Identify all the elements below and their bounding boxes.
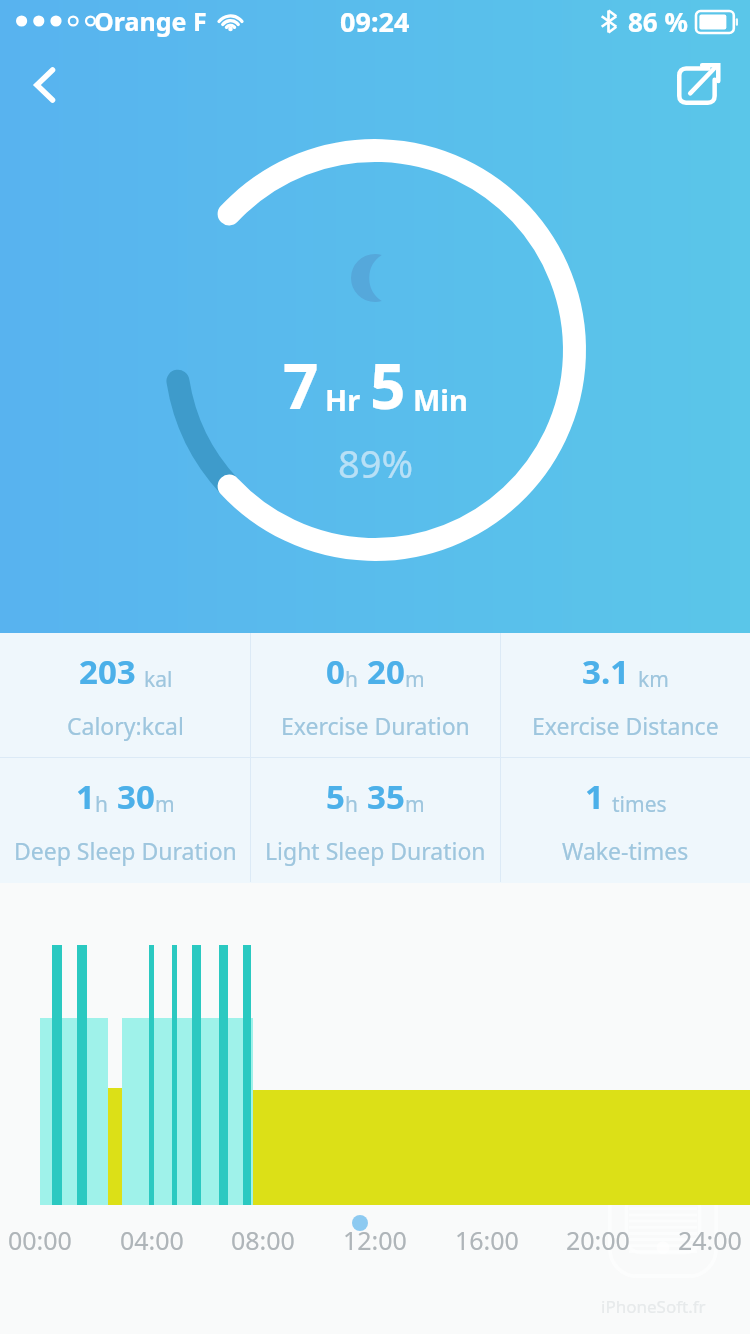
staticText: 20: [367, 649, 405, 694]
staticText: 20:00: [566, 1223, 630, 1257]
staticText: Exercise Duration: [281, 710, 470, 741]
staticText: Wake-times: [562, 835, 689, 866]
staticText: 04:00: [120, 1223, 184, 1257]
staticText: 89%: [338, 437, 414, 489]
staticText: h: [345, 665, 358, 694]
staticText: Orange F: [94, 4, 207, 38]
staticText: h: [345, 790, 358, 819]
staticText: 12:00: [343, 1223, 407, 1257]
staticText: m: [155, 790, 175, 819]
button[interactable]: 1: [501, 758, 750, 882]
staticText: Light Sleep Duration: [265, 835, 486, 866]
staticText: 09:24: [340, 3, 410, 40]
staticText: 5: [370, 343, 406, 427]
staticText: Min: [413, 380, 468, 419]
staticText: 0: [326, 649, 345, 694]
staticText: times: [612, 790, 667, 819]
staticText: 24:00: [678, 1223, 742, 1257]
staticText: h: [95, 790, 108, 819]
staticText: kal: [144, 665, 173, 694]
staticText: 00:00: [8, 1223, 72, 1257]
button[interactable]: 5: [251, 758, 500, 882]
button[interactable]: 3.1: [501, 633, 750, 757]
staticText: 7: [283, 343, 319, 427]
staticText: 16:00: [455, 1223, 519, 1257]
staticText: m: [405, 790, 425, 819]
staticText: m: [405, 665, 425, 694]
button[interactable]: 203: [0, 633, 250, 757]
button[interactable]: Share: [672, 58, 724, 110]
button[interactable]: 0: [251, 633, 500, 757]
staticText: 1: [585, 774, 604, 819]
staticText: 08:00: [231, 1223, 295, 1257]
staticText: 5: [326, 774, 345, 819]
staticText: 30: [117, 774, 155, 819]
staticText: Deep Sleep Duration: [14, 835, 237, 866]
staticText: Exercise Distance: [532, 710, 719, 741]
staticText: 86 %: [628, 4, 688, 39]
staticText: iPhoneSoft.fr: [601, 1295, 706, 1318]
staticText: 1: [76, 774, 95, 819]
staticText: 3.1: [582, 649, 630, 694]
staticText: km: [638, 665, 669, 694]
staticText: Calory:kcal: [67, 710, 184, 741]
staticText: Hr: [325, 380, 361, 419]
button[interactable]: 1: [0, 758, 250, 882]
staticText: 35: [367, 774, 405, 819]
button[interactable]: Back: [16, 56, 74, 114]
staticText: 203: [79, 649, 136, 694]
